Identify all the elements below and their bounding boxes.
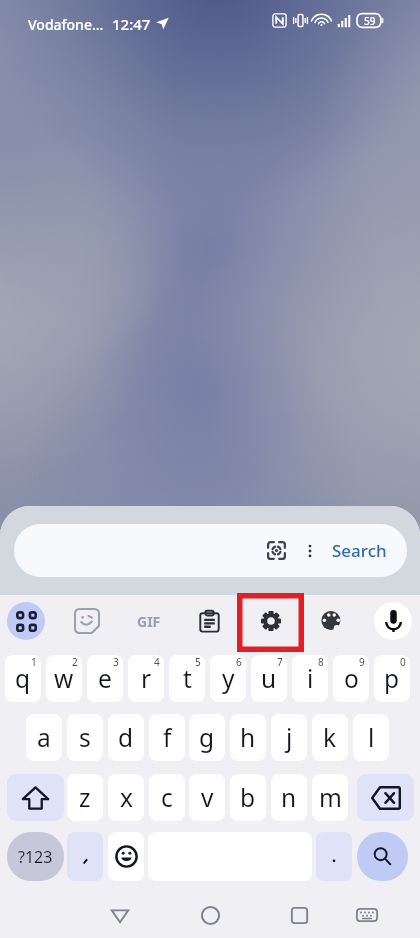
button[interactable]: v [189,774,225,821]
button[interactable]: q [5,655,41,702]
staticText: t [183,662,192,695]
button[interactable]: i [292,655,328,702]
staticText: p [384,662,400,695]
staticText: v [201,781,214,814]
button[interactable]: Lens [14,524,407,577]
staticText: ?123 [18,846,53,868]
other: More options [303,544,317,558]
button[interactable]: n [271,774,307,821]
staticText: 4 [154,655,160,669]
staticText: s [79,721,91,754]
staticText: 6 [236,655,242,669]
staticText: 2 [72,655,78,669]
staticText: Vodafone… [28,15,104,34]
button[interactable]: b [230,774,266,821]
button[interactable]: d [108,714,144,761]
staticText: m [319,781,342,814]
button[interactable]: Apps [7,602,45,640]
staticText: 12:47 [112,14,151,34]
staticText: h [240,721,256,754]
button[interactable]: t [169,655,205,702]
staticText: 8 [318,655,324,669]
staticText: x [120,781,133,814]
button[interactable]: g [189,714,225,761]
button[interactable]: ?123 [7,832,64,881]
staticText: l [368,721,375,754]
staticText: 1 [31,655,37,669]
button[interactable]: Settings [252,602,290,640]
staticText: 9 [359,655,365,669]
staticText: GIF [137,612,161,631]
staticText: q [15,662,31,695]
staticText: Search [332,539,387,562]
button[interactable]: Backspace [357,774,414,821]
button[interactable]: Search [357,832,408,881]
button[interactable]: e [87,655,123,702]
button[interactable]: h [230,714,266,761]
button[interactable]: m [312,774,348,821]
button[interactable]: u [251,655,287,702]
staticText: 7 [277,655,283,669]
button[interactable]: s [67,714,103,761]
staticText: c [161,781,173,814]
button[interactable]: c [149,774,185,821]
button[interactable]: GIF [130,602,168,640]
button[interactable]: j [271,714,307,761]
staticText: i [307,662,314,695]
button[interactable]: k [312,714,348,761]
button[interactable]: Period [316,832,352,881]
staticText: 5 [195,655,201,669]
staticText: y [222,662,235,695]
staticText: b [240,781,256,814]
button[interactable]: Emoji [108,832,144,881]
button[interactable]: Stickers [68,602,106,640]
staticText: 59 [364,14,376,28]
button[interactable]: Back [100,895,140,935]
staticText: z [79,781,91,814]
other: Lens [267,541,286,560]
button[interactable]: Theme [312,602,350,640]
staticText: r [141,662,152,695]
button[interactable]: Comma [67,832,103,881]
button[interactable]: w [46,655,82,702]
button[interactable]: r [128,655,164,702]
button[interactable]: o [333,655,369,702]
button[interactable]: y [210,655,246,702]
button[interactable]: Voice input [374,602,412,640]
staticText: g [199,721,215,754]
staticText: a [37,721,51,754]
button[interactable]: f [149,714,185,761]
button[interactable]: Home [190,895,230,935]
staticText: d [118,721,134,754]
button[interactable]: p [374,655,410,702]
staticText: f [163,721,172,754]
button[interactable]: z [67,774,103,821]
button[interactable]: Switch keyboard [347,895,387,935]
staticText: k [323,721,337,754]
staticText: o [344,662,359,695]
staticText: 0 [400,655,406,669]
staticText: e [98,662,112,695]
staticText: n [281,781,297,814]
staticText: 3 [113,655,119,669]
button[interactable]: Recents [279,895,319,935]
button[interactable]: x [108,774,144,821]
staticText: j [286,721,293,754]
button[interactable]: Shift [7,774,64,821]
button[interactable]: a [26,714,62,761]
button[interactable]: Clipboard [190,602,228,640]
button[interactable]: l [353,714,389,761]
staticText: w [54,662,74,695]
staticText: u [261,662,277,695]
